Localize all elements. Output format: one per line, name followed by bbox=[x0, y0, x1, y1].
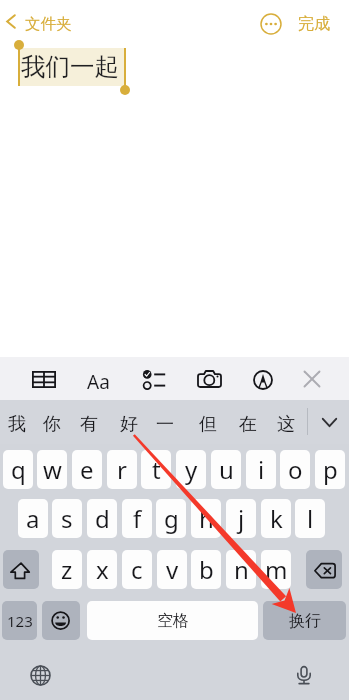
button[interactable]: y bbox=[176, 450, 206, 489]
button[interactable]: Emoji bbox=[42, 601, 80, 640]
staticText: q bbox=[11, 453, 26, 486]
button[interactable]: Markup bbox=[247, 364, 279, 396]
button[interactable]: m bbox=[261, 550, 291, 589]
staticText: z bbox=[61, 553, 73, 586]
button[interactable]: n bbox=[226, 550, 256, 589]
button[interactable]: 123 bbox=[2, 601, 37, 640]
button[interactable]: Close bbox=[298, 365, 326, 393]
staticText: i bbox=[258, 453, 265, 486]
button[interactable]: v bbox=[157, 550, 187, 589]
staticText: 但 bbox=[199, 413, 217, 436]
button[interactable]: Expand candidates bbox=[309, 400, 349, 444]
staticText: m bbox=[265, 553, 288, 586]
button[interactable]: 我 bbox=[0, 402, 34, 446]
staticText: c bbox=[131, 553, 143, 586]
button[interactable]: t bbox=[141, 450, 171, 489]
button[interactable]: Camera bbox=[191, 364, 228, 394]
button[interactable]: e bbox=[72, 450, 102, 489]
staticText: a bbox=[26, 502, 40, 535]
button[interactable]: 好 bbox=[112, 402, 146, 446]
staticText: o bbox=[288, 453, 303, 486]
button[interactable]: 一 bbox=[148, 402, 182, 446]
staticText: 一 bbox=[156, 413, 174, 436]
button[interactable]: 你 bbox=[35, 402, 69, 446]
button[interactable]: r bbox=[107, 450, 137, 489]
button[interactable]: h bbox=[191, 499, 221, 538]
staticText: 文件夹 bbox=[25, 14, 72, 34]
staticText: d bbox=[95, 502, 110, 535]
button[interactable]: x bbox=[87, 550, 117, 589]
button[interactable]: l bbox=[295, 499, 325, 538]
button[interactable]: Dictation bbox=[291, 662, 317, 688]
staticText: 这 bbox=[277, 413, 295, 436]
staticText: v bbox=[166, 553, 179, 586]
button[interactable]: More bbox=[258, 11, 283, 36]
staticText: 完成 bbox=[298, 14, 330, 34]
button[interactable]: s bbox=[52, 499, 82, 538]
button[interactable]: b bbox=[191, 550, 221, 589]
button[interactable]: 但 bbox=[191, 402, 225, 446]
button[interactable]: Backspace bbox=[306, 550, 342, 589]
staticText: p bbox=[323, 453, 338, 486]
button[interactable]: c bbox=[122, 550, 152, 589]
staticText: s bbox=[61, 502, 73, 535]
staticText: x bbox=[96, 553, 109, 586]
button[interactable]: w bbox=[37, 450, 67, 489]
button[interactable]: Switch keyboard bbox=[27, 662, 53, 688]
button[interactable]: o bbox=[280, 450, 310, 489]
staticText: h bbox=[199, 502, 214, 535]
button[interactable]: q bbox=[3, 450, 33, 489]
button[interactable]: 在 bbox=[231, 402, 265, 446]
staticText: f bbox=[133, 502, 142, 535]
button[interactable]: d bbox=[87, 499, 117, 538]
button[interactable]: f bbox=[122, 499, 152, 538]
staticText: 好 bbox=[120, 413, 138, 436]
staticText: 换行 bbox=[289, 611, 321, 631]
staticText: r bbox=[117, 453, 127, 486]
staticText: n bbox=[234, 553, 249, 586]
button[interactable]: Table bbox=[26, 365, 62, 394]
button[interactable]: z bbox=[52, 550, 82, 589]
staticText: g bbox=[164, 502, 179, 535]
staticText: w bbox=[43, 453, 62, 486]
button[interactable]: 这 bbox=[269, 402, 303, 446]
button[interactable]: 有 bbox=[72, 402, 106, 446]
staticText: b bbox=[199, 553, 214, 586]
staticText: k bbox=[270, 502, 283, 535]
staticText: 空格 bbox=[157, 611, 189, 631]
staticText: 在 bbox=[239, 413, 257, 436]
button[interactable]: 完成 bbox=[298, 14, 330, 34]
button[interactable]: j bbox=[226, 499, 256, 538]
button[interactable]: g bbox=[156, 499, 186, 538]
staticText: l bbox=[307, 502, 314, 535]
button[interactable]: a bbox=[18, 499, 48, 538]
staticText: 有 bbox=[80, 413, 98, 436]
staticText: u bbox=[219, 453, 234, 486]
staticText: 我 bbox=[8, 413, 26, 436]
button[interactable]: k bbox=[261, 499, 291, 538]
staticText: t bbox=[152, 453, 161, 486]
button[interactable]: p bbox=[315, 450, 345, 489]
staticText: Aa bbox=[87, 369, 110, 395]
staticText: 123 bbox=[7, 611, 33, 631]
button[interactable]: 文件夹 bbox=[2, 8, 80, 34]
button[interactable]: i bbox=[246, 450, 276, 489]
button[interactable]: Checklist bbox=[136, 363, 172, 396]
staticText: j bbox=[238, 502, 245, 535]
staticText: e bbox=[80, 453, 94, 486]
staticText: y bbox=[185, 453, 198, 486]
button[interactable]: Shift bbox=[3, 550, 39, 589]
button[interactable]: 空格 bbox=[87, 601, 258, 640]
button[interactable]: u bbox=[211, 450, 241, 489]
staticText: 你 bbox=[43, 413, 61, 436]
button[interactable]: 换行 bbox=[263, 601, 346, 640]
staticText: 我们一起 bbox=[21, 51, 119, 82]
